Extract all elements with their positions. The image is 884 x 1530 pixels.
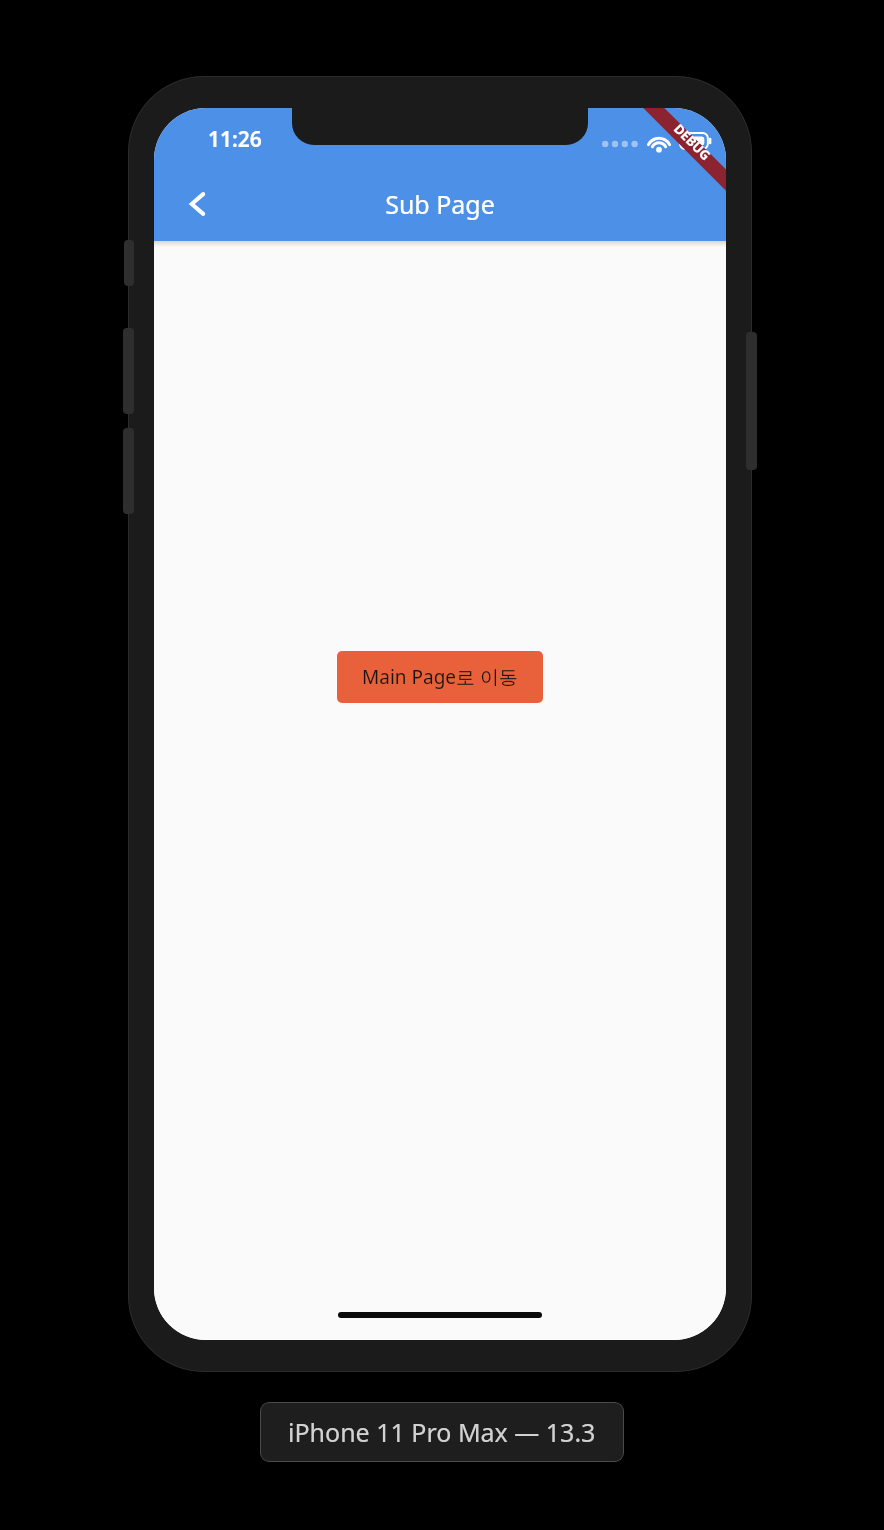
button[interactable]: Back — [170, 176, 226, 232]
button[interactable]: Main Page로 이동 — [337, 651, 543, 703]
staticText: Main Page로 이동 — [362, 664, 518, 690]
staticText: Sub Page — [385, 187, 495, 221]
staticText: 11:26 — [208, 125, 262, 154]
staticText: DEBUG — [670, 120, 715, 164]
staticText: iPhone 11 Pro Max — 13.3 — [288, 1415, 596, 1449]
